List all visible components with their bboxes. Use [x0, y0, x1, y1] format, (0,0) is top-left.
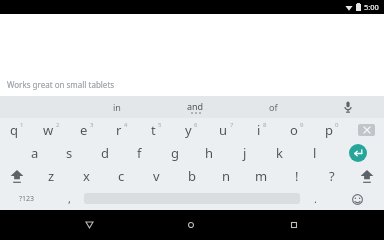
button[interactable]: Enter — [332, 141, 384, 164]
staticText: ? — [329, 167, 335, 185]
staticText: a — [31, 144, 39, 162]
button[interactable]: k — [262, 141, 297, 164]
staticText: 0 — [335, 121, 339, 129]
button[interactable]: j — [227, 141, 262, 164]
button[interactable]: u — [209, 118, 244, 141]
staticText: 9 — [300, 121, 304, 129]
staticText: 1 — [20, 121, 24, 129]
staticText: p — [325, 121, 333, 139]
staticText: 6 — [194, 121, 198, 129]
staticText: k — [276, 144, 283, 162]
button[interactable]: l — [297, 141, 332, 164]
button[interactable]: e — [69, 118, 104, 141]
button[interactable]: b — [174, 164, 209, 187]
button[interactable]: h — [192, 141, 227, 164]
staticText: t — [151, 121, 156, 139]
button[interactable]: ! — [279, 164, 314, 187]
staticText: . — [314, 191, 317, 206]
staticText: c — [118, 167, 125, 185]
button[interactable]: of — [234, 96, 312, 118]
staticText: n — [222, 167, 231, 185]
button[interactable]: Shift — [0, 164, 34, 187]
button[interactable]: w — [34, 118, 69, 141]
button[interactable]: Backspace — [349, 118, 384, 141]
button[interactable]: i — [244, 118, 279, 141]
staticText: of — [269, 101, 278, 113]
staticText: d — [101, 144, 109, 162]
button[interactable]: and — [156, 96, 234, 118]
button[interactable]: Shift — [349, 164, 384, 187]
staticText: l — [313, 144, 317, 162]
staticText: j — [243, 144, 247, 162]
staticText: r — [116, 121, 122, 139]
staticText: Works great on small tablets — [7, 79, 115, 90]
button[interactable]: , — [54, 187, 84, 210]
staticText: y — [185, 121, 192, 139]
staticText: in — [113, 101, 121, 113]
staticText: g — [171, 144, 179, 162]
staticText: i — [257, 121, 261, 139]
staticText: 7 — [230, 121, 234, 129]
button[interactable]: ? — [314, 164, 349, 187]
button[interactable]: x — [69, 164, 104, 187]
button[interactable]: Emoji — [346, 188, 368, 210]
staticText: v — [153, 167, 160, 185]
button[interactable]: v — [139, 164, 174, 187]
button[interactable]: c — [104, 164, 139, 187]
staticText: w — [43, 121, 54, 139]
staticText: z — [48, 167, 55, 185]
button[interactable]: q — [0, 118, 34, 141]
button[interactable]: y — [174, 118, 209, 141]
button[interactable]: a — [17, 141, 52, 164]
staticText: h — [205, 144, 214, 162]
button[interactable]: Voice input — [335, 96, 361, 118]
staticText: 4 — [124, 121, 128, 129]
staticText: 5:00 — [364, 2, 379, 12]
staticText: 8 — [263, 121, 267, 129]
staticText: , — [68, 191, 71, 206]
button[interactable]: ?123 — [0, 187, 54, 210]
staticText: f — [137, 144, 142, 162]
staticText: ?123 — [19, 194, 35, 204]
staticText: x — [83, 167, 90, 185]
staticText: and — [187, 100, 204, 112]
button[interactable]: o — [279, 118, 314, 141]
button[interactable]: p — [314, 118, 349, 141]
button[interactable]: g — [157, 141, 192, 164]
button[interactable]: . — [300, 187, 330, 210]
staticText: q — [10, 121, 18, 139]
button[interactable]: r — [104, 118, 139, 141]
button[interactable]: Back — [76, 218, 102, 232]
staticText: s — [66, 144, 73, 162]
button[interactable]: t — [139, 118, 174, 141]
button[interactable]: n — [209, 164, 244, 187]
staticText: 3 — [90, 121, 94, 129]
button[interactable]: s — [52, 141, 87, 164]
staticText: o — [290, 121, 298, 139]
staticText: e — [80, 121, 88, 139]
staticText: 2 — [56, 121, 60, 129]
staticText: 5 — [158, 121, 162, 129]
staticText: ! — [295, 167, 299, 185]
staticText: m — [255, 167, 268, 185]
button[interactable]: Home — [178, 218, 204, 232]
button[interactable]: d — [87, 141, 122, 164]
button[interactable]: z — [34, 164, 69, 187]
staticText: u — [219, 121, 228, 139]
button[interactable]: m — [244, 164, 279, 187]
button[interactable]: in — [78, 96, 156, 118]
button[interactable]: f — [122, 141, 157, 164]
button[interactable]: Recent apps — [281, 218, 307, 232]
staticText: b — [188, 167, 196, 185]
